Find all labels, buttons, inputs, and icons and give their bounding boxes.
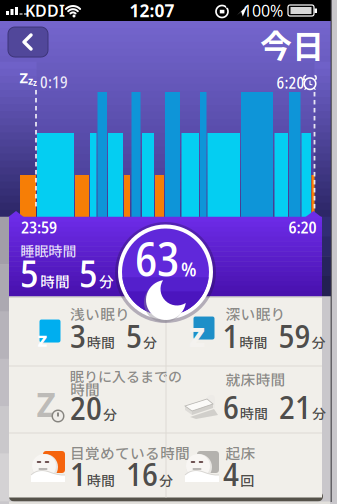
staticText: 12:07 xyxy=(129,0,174,22)
staticText: 浅い眠り xyxy=(70,303,130,324)
staticText: 分 xyxy=(103,404,117,424)
staticText: 今日 xyxy=(260,21,324,67)
staticText: 5 xyxy=(126,312,142,358)
staticText: z xyxy=(33,78,37,88)
staticText: 回 xyxy=(240,470,254,490)
button[interactable]: Back xyxy=(8,27,48,57)
staticText: z xyxy=(189,312,205,356)
staticText: 分 xyxy=(312,403,326,423)
staticText: 6:20 xyxy=(276,72,304,93)
staticText: 時間 xyxy=(70,378,100,400)
staticText: KDDI xyxy=(25,0,65,21)
staticText: 分 xyxy=(311,332,325,352)
staticText: % xyxy=(181,255,196,282)
staticText: 1 xyxy=(70,450,86,496)
staticText: 分 xyxy=(99,270,114,292)
staticText: 時間 xyxy=(239,332,267,352)
staticText: 0:19 xyxy=(40,71,68,93)
staticText: 6:20 xyxy=(288,216,316,238)
staticText: 59 xyxy=(278,312,310,358)
staticText: 4 xyxy=(223,450,239,496)
staticText: 時間 xyxy=(240,403,268,423)
staticText: 5 xyxy=(20,246,38,299)
staticText: 就床時間 xyxy=(225,368,285,390)
staticText: 23:59 xyxy=(21,216,57,238)
staticText: 1 xyxy=(222,312,238,358)
staticText: 目覚めている時間 xyxy=(70,442,190,463)
staticText: Z xyxy=(19,68,27,87)
staticText: 時間 xyxy=(40,270,70,292)
staticText: Z xyxy=(36,382,55,426)
staticText: 63 xyxy=(135,227,179,290)
staticText: 分 xyxy=(143,332,157,352)
staticText: 6 xyxy=(223,383,239,429)
staticText: 100% xyxy=(243,0,283,21)
staticText: z xyxy=(37,326,47,352)
staticText: 眠りに入るまでの xyxy=(70,366,182,386)
staticText: 20 xyxy=(70,384,102,430)
staticText: 起床 xyxy=(225,442,255,463)
staticText: 分 xyxy=(159,470,173,490)
staticText: 16 xyxy=(126,450,158,496)
staticText: 睡眠時間 xyxy=(20,240,76,261)
button[interactable]: 今日 xyxy=(260,21,324,67)
staticText: 21 xyxy=(279,383,311,429)
staticText: 5 xyxy=(79,246,97,299)
staticText: 時間 xyxy=(87,470,115,490)
staticText: 時間 xyxy=(87,332,115,352)
staticText: z xyxy=(28,73,33,88)
staticText: 深い眠り xyxy=(225,303,285,324)
staticText: 3 xyxy=(70,312,86,358)
